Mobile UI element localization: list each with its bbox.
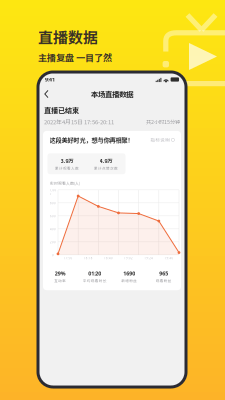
staticText: 共2小时15分钟 [146, 118, 180, 125]
staticText: 这段美好时光，想与你再相聚！ [49, 135, 133, 144]
staticText: 平均观看时长 [83, 278, 107, 283]
staticText: 17:56 [64, 256, 73, 260]
staticText: 0 [52, 253, 54, 257]
staticText: 18:18 [84, 256, 93, 260]
staticText: 200 [50, 240, 56, 244]
staticText: 19:46 [164, 256, 173, 260]
staticText: 9:41 [45, 76, 55, 83]
staticText: 新增粉丝 [121, 278, 137, 283]
staticText: 18:40 [104, 256, 113, 260]
staticText: 400 [50, 227, 56, 231]
staticText: 1690 [123, 270, 135, 277]
staticText: 29% [55, 270, 66, 277]
staticText: 本场直播数据 [91, 89, 133, 99]
staticText: 观看粉丝 [156, 278, 172, 283]
staticText: 实时观看人数(人) [50, 180, 80, 186]
staticText: 19:24 [144, 256, 153, 260]
button[interactable]: 指标说明 [150, 137, 174, 143]
staticText: 965 [159, 270, 168, 277]
staticText: 累计点赞次数 [94, 165, 118, 171]
staticText: 累计观看人数 [55, 165, 79, 171]
staticText: 600 [50, 214, 56, 218]
staticText: 01:20 [88, 270, 101, 277]
staticText: 3.9万 [60, 157, 73, 164]
button[interactable]: Back [41, 87, 52, 101]
staticText: 1,000 [49, 188, 56, 195]
staticText: 指标说明 [150, 137, 170, 143]
staticText: 直播已结束 [44, 105, 79, 115]
staticText: 互动率 [54, 278, 66, 283]
staticText: 直播数据 [38, 26, 98, 48]
staticText: 主播复盘 一目了然 [38, 51, 112, 64]
staticText: 4.9万 [99, 157, 112, 164]
staticText: 19:02 [124, 256, 133, 260]
staticText: 800 [50, 201, 56, 205]
staticText: 2022年4月15日 17:56-20:11 [44, 117, 114, 126]
